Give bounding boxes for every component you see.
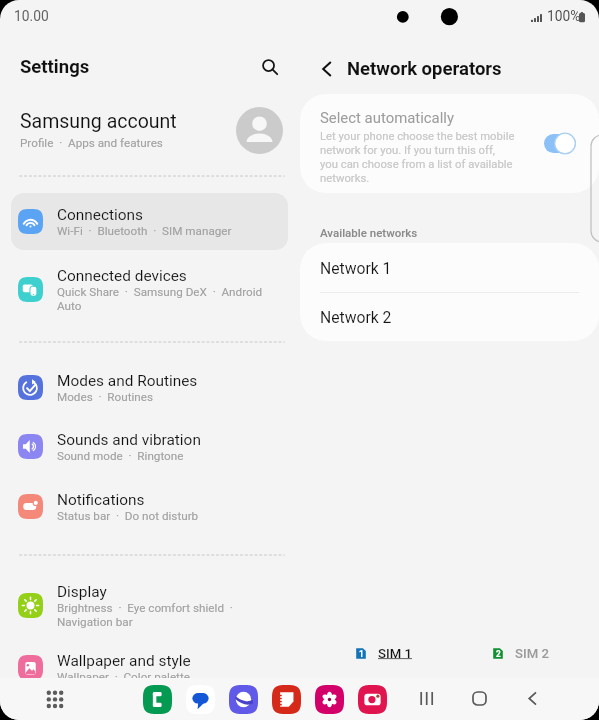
staticText: Quick Share · Samsung DeX · Android Auto (57, 285, 263, 313)
button[interactable]: Network 2 (300, 293, 599, 340)
button[interactable]: App (229, 685, 258, 714)
staticText: Display (57, 583, 107, 601)
button[interactable]: Samsung account (0, 101, 300, 159)
button[interactable]: Home (464, 683, 495, 714)
staticText: Notifications (57, 491, 145, 509)
staticText: Wallpaper and style (57, 652, 191, 670)
staticText: Wallpaper · Color palette (57, 670, 190, 684)
staticText: Modes and Routines (57, 372, 198, 390)
button[interactable]: Wallpaper and style (11, 639, 288, 696)
staticText: Let your phone choose the best mobile ne… (320, 130, 515, 185)
button[interactable]: App (315, 685, 344, 714)
button[interactable]: Recents (412, 683, 443, 714)
button[interactable]: Select automatically (300, 94, 599, 193)
button[interactable]: Connections (11, 193, 288, 250)
button[interactable]: Back (311, 53, 343, 85)
staticText: Available networks (320, 226, 418, 239)
staticText: Network 1 (320, 259, 392, 277)
button[interactable]: Display (11, 577, 288, 634)
button[interactable]: App (186, 685, 215, 714)
staticText: Modes · Routines (57, 390, 153, 404)
staticText: Connections (57, 206, 144, 224)
button[interactable]: App (358, 685, 387, 714)
staticText: SIM 1 (378, 646, 413, 661)
button[interactable]: App (272, 685, 301, 714)
button[interactable]: Sounds and vibration (11, 418, 288, 475)
button[interactable]: Network 1 (300, 243, 599, 292)
staticText: Connected devices (57, 267, 187, 285)
button[interactable]: Back (517, 683, 548, 714)
button[interactable]: App (143, 685, 172, 714)
staticText: Profile · Apps and features (20, 136, 163, 150)
staticText: Sound mode · Ringtone (57, 449, 184, 463)
staticText: Select automatically (320, 109, 454, 126)
button[interactable]: Search (254, 51, 285, 82)
staticText: Network operators (347, 58, 502, 80)
staticText: Samsung account (20, 110, 177, 133)
button[interactable]: Notifications (11, 478, 288, 535)
staticText: 100% (547, 8, 581, 24)
staticText: Settings (20, 56, 90, 78)
staticText: Status bar · Do not disturb (57, 509, 199, 523)
staticText: SIM 2 (515, 646, 550, 661)
button[interactable]: Modes and Routines (11, 359, 288, 416)
staticText: 1 (359, 649, 364, 659)
staticText: Sounds and vibration (57, 431, 201, 449)
staticText: Network 2 (320, 308, 392, 326)
staticText: 10.00 (14, 8, 49, 24)
button[interactable]: 2 (486, 639, 556, 667)
button[interactable]: Connected devices (11, 261, 288, 318)
staticText: Brightness · Eye comfort shield · Naviga… (57, 601, 233, 629)
staticText: 2 (496, 649, 501, 659)
staticText: Wi-Fi · Bluetooth · SIM manager (57, 224, 232, 238)
button[interactable]: 1 (349, 639, 419, 667)
button[interactable]: Apps (39, 684, 70, 715)
